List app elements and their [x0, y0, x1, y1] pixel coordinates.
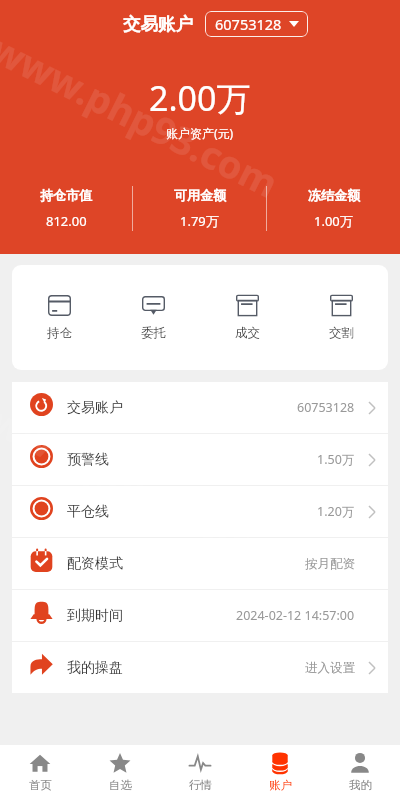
staticText: 2024-02-12 14:57:00 [236, 607, 355, 624]
button[interactable]: 我的 [320, 745, 400, 799]
staticText: www.php93.com [0, 394, 288, 581]
staticText: 我的操盘 [67, 659, 123, 677]
staticText: 成交 [235, 325, 260, 341]
staticText: 首页 [29, 778, 52, 792]
staticText: 自选 [109, 778, 132, 792]
button[interactable]: 到期时间 [12, 590, 388, 641]
button[interactable]: 预警线 [12, 434, 388, 485]
staticText: 1.79万 [180, 212, 219, 230]
staticText: 60753128 [297, 399, 355, 416]
button[interactable]: 配资模式 [12, 538, 388, 589]
staticText: 交易账户 [123, 13, 193, 35]
button[interactable]: 自选 [80, 745, 160, 799]
staticText: 我的 [349, 778, 372, 792]
staticText: 1.50万 [317, 451, 355, 468]
button[interactable]: 首页 [0, 745, 80, 799]
staticText: 60753128 [215, 14, 282, 34]
staticText: 冻结金额 [308, 187, 360, 203]
staticText: www.php93.com [0, 22, 288, 209]
staticText: 持仓 [47, 325, 72, 341]
button[interactable]: 行情 [160, 745, 240, 799]
staticText: 2.00万 [149, 75, 251, 121]
staticText: 可用金额 [174, 187, 226, 203]
button[interactable]: 60753128 [205, 11, 308, 37]
staticText: 按月配资 [305, 556, 355, 572]
staticText: 交割 [329, 325, 354, 341]
button[interactable]: 账户 [240, 745, 320, 799]
button[interactable]: 成交 [200, 265, 294, 370]
button[interactable]: 交易账户 [12, 382, 388, 433]
staticText: 到期时间 [67, 607, 123, 625]
staticText: 1.20万 [317, 503, 355, 520]
staticText: 账户 [269, 778, 292, 792]
staticText: 平仓线 [67, 503, 109, 521]
staticText: 1.00万 [314, 212, 353, 230]
staticText: 持仓市值 [40, 187, 92, 203]
staticText: 812.00 [46, 212, 87, 230]
staticText: 交易账户 [67, 399, 123, 417]
button[interactable]: 我的操盘 [12, 642, 388, 693]
staticText: www.php93.com [0, 766, 288, 799]
button[interactable]: 交割 [294, 265, 388, 370]
staticText: 账户资产(元) [166, 125, 234, 141]
staticText: 配资模式 [67, 555, 123, 573]
button[interactable]: 持仓 [12, 265, 106, 370]
staticText: 委托 [141, 325, 166, 341]
staticText: 预警线 [67, 451, 109, 469]
button[interactable]: 平仓线 [12, 486, 388, 537]
button[interactable]: 委托 [106, 265, 200, 370]
staticText: 行情 [189, 778, 212, 792]
staticText: 进入设置 [305, 660, 355, 676]
